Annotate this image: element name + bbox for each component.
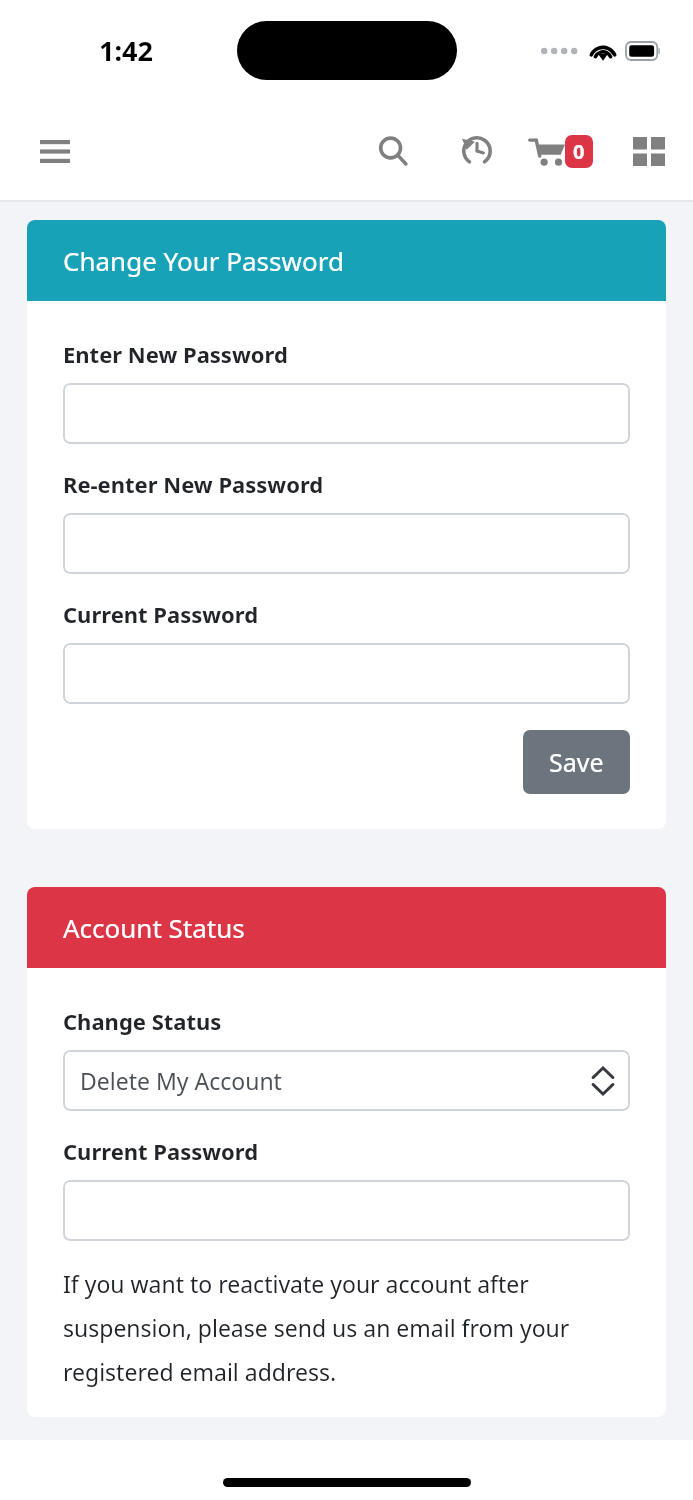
staticText: Change Your Password bbox=[63, 243, 344, 278]
button[interactable] bbox=[63, 1180, 630, 1241]
staticText: Current Password bbox=[63, 1136, 259, 1166]
button[interactable]: History bbox=[447, 121, 507, 181]
staticText: Delete My Account bbox=[80, 1065, 282, 1096]
button[interactable] bbox=[63, 643, 630, 704]
button[interactable]: Save bbox=[523, 730, 630, 794]
staticText: If you want to reactivate your account a… bbox=[63, 1268, 630, 1387]
staticText: Enter New Password bbox=[63, 339, 288, 369]
staticText: Change Status bbox=[63, 1006, 222, 1036]
button[interactable]: Change status dropdown bbox=[63, 1050, 630, 1111]
button[interactable] bbox=[63, 383, 630, 444]
button[interactable]: Cart, 0 items bbox=[523, 121, 599, 181]
staticText: 1:42 bbox=[99, 32, 153, 69]
button[interactable]: Apps bbox=[619, 121, 679, 181]
staticText: Current Password bbox=[63, 599, 259, 629]
button[interactable]: Menu bbox=[27, 123, 83, 179]
staticText: 0 bbox=[573, 138, 585, 165]
staticText: Re-enter New Password bbox=[63, 469, 324, 499]
button[interactable] bbox=[63, 513, 630, 574]
staticText: Save bbox=[549, 745, 604, 779]
staticText: Account Status bbox=[63, 910, 245, 945]
button[interactable]: Search bbox=[363, 121, 423, 181]
